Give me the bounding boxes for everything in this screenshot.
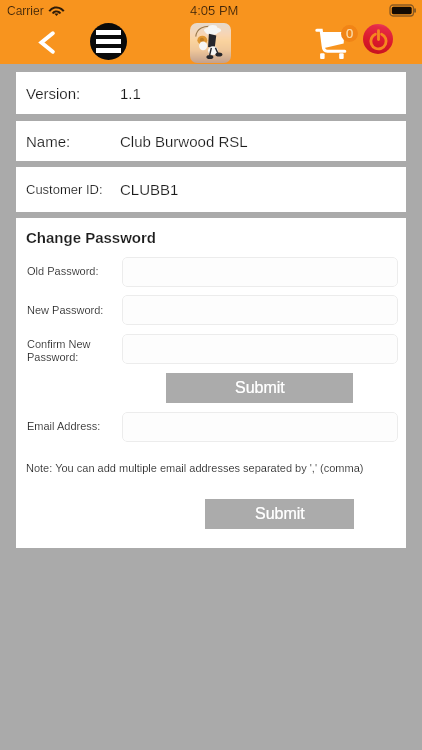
button[interactable]: Shopping cart [315,28,361,59]
staticText: Submit [235,379,285,397]
button[interactable] [122,334,398,364]
staticText: Carrier [7,4,44,17]
staticText: Change Password [26,229,157,246]
staticText: CLUBB1 [120,181,179,198]
staticText: New Password: [27,304,104,316]
button[interactable]: Menu [90,23,127,60]
staticText: Confirm New [27,338,91,350]
button[interactable]: Customer ID: [16,167,406,212]
button[interactable] [122,412,398,442]
button[interactable]: Home [190,23,231,63]
staticText: 0 [346,26,354,41]
staticText: Email Address: [27,420,101,432]
staticText: Submit [255,505,305,523]
staticText: 4:05 PM [190,3,239,18]
button[interactable] [122,257,398,287]
button[interactable]: Submit [205,499,354,529]
staticText: Old Password: [27,265,99,277]
button[interactable]: Back [30,25,64,60]
button[interactable]: Submit [166,373,353,403]
staticText: Club Burwood RSL [120,133,248,150]
button[interactable]: Version: [16,72,406,114]
staticText: Version: [26,85,81,102]
button[interactable]: Name: [16,121,406,161]
staticText: Password: [27,351,79,363]
staticText: Customer ID: [26,182,103,197]
staticText: 1.1 [120,85,141,102]
button[interactable]: Log out [363,24,393,54]
button[interactable] [122,295,398,325]
staticText: Note: You can add multiple email address… [26,462,364,474]
staticText: Name: [26,133,71,150]
